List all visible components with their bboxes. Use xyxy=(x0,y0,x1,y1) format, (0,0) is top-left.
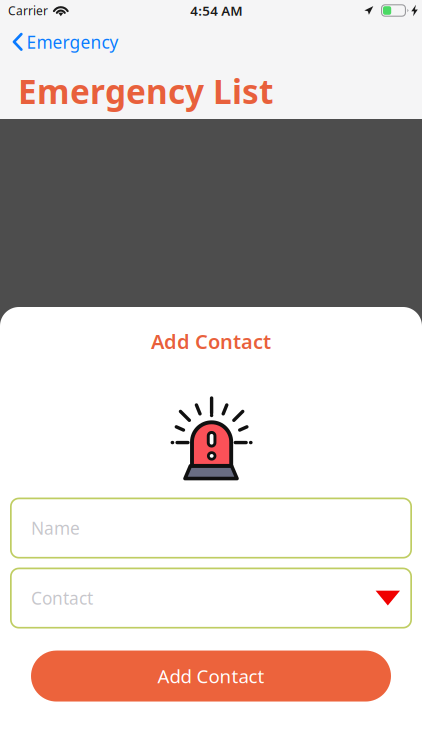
staticText: Carrier xyxy=(8,2,48,18)
staticText: Emergency List xyxy=(18,69,273,113)
button[interactable]: Emergency xyxy=(0,28,422,56)
staticText: Add Contact xyxy=(157,664,264,688)
staticText: Name xyxy=(31,517,80,540)
staticText: Emergency xyxy=(27,30,119,53)
staticText: Add Contact xyxy=(151,328,271,355)
staticText: 4:54 AM xyxy=(190,2,242,19)
button[interactable]: Add Contact xyxy=(0,651,422,702)
button[interactable]: Contact xyxy=(0,568,422,629)
staticText: Contact xyxy=(31,587,93,610)
